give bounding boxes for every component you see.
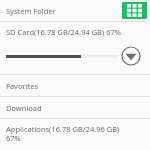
button[interactable]: Download bbox=[0, 97, 150, 118]
button[interactable]: Favorites bbox=[0, 75, 150, 96]
staticText: System Folder bbox=[6, 6, 56, 16]
staticText: SD Card(16.78 GB/24.94 GB) 67% bbox=[6, 27, 122, 37]
staticText: Download bbox=[6, 103, 42, 113]
button[interactable]: Apps bbox=[122, 2, 147, 19]
staticText: Favorites bbox=[6, 81, 39, 91]
button[interactable]: Expand bbox=[120, 45, 142, 67]
staticText: Applications(16.78 GB/24.96 GB) 67% bbox=[6, 124, 120, 144]
button[interactable]: System Folder bbox=[6, 6, 56, 16]
